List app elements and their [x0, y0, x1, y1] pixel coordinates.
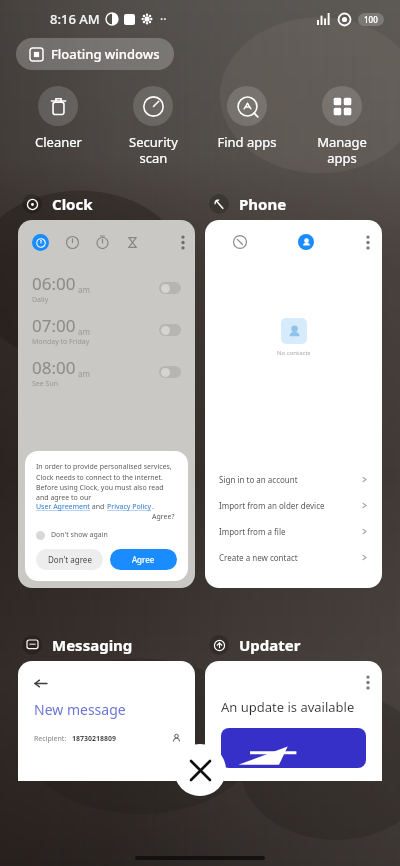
staticText: 06:00 [32, 272, 76, 295]
button[interactable]: Don't show again [36, 530, 108, 540]
button[interactable]: Import from an older device [205, 492, 382, 518]
staticText: Security scan [129, 133, 178, 166]
button[interactable]: New message [18, 661, 195, 781]
button[interactable]: 08:00 [18, 351, 195, 393]
staticText: 18730218809 [72, 734, 117, 744]
staticText: Don't agree [48, 554, 92, 565]
button[interactable]: Phone [205, 194, 287, 214]
staticText: 8:16 AM [50, 10, 100, 28]
staticText: Floating windows [51, 45, 160, 63]
button[interactable]: Close all [174, 744, 226, 796]
staticText: Updater [239, 635, 301, 655]
staticText: See Sun [32, 379, 59, 389]
staticText: 08:00 [32, 356, 76, 379]
staticText: Daily [32, 295, 49, 305]
staticText: Don't show again [51, 530, 108, 540]
staticText: am [78, 284, 90, 295]
button[interactable]: 06:00 [18, 267, 195, 309]
button[interactable]: Create a new contact [205, 544, 382, 570]
staticText: 07:00 [32, 314, 76, 337]
staticText: Phone [239, 194, 287, 214]
staticText: Import from an older device [219, 500, 325, 511]
staticText: am [78, 326, 90, 337]
button[interactable]: Messaging [18, 635, 133, 655]
staticText: Create a new contact [219, 552, 298, 563]
button[interactable]: Security scan [111, 86, 195, 166]
button[interactable]: Cleaner [16, 86, 100, 151]
staticText: . Agree? [152, 502, 177, 522]
button[interactable]: Sign in to an account [205, 466, 382, 492]
staticText: Sign in to an account [219, 474, 298, 485]
staticText: Import from a file [219, 526, 286, 537]
staticText: New message [34, 700, 126, 719]
staticText: Manage apps [317, 133, 367, 166]
staticText: An update is available [221, 698, 355, 716]
button[interactable]: Manage apps [300, 86, 384, 166]
staticText: Messaging [52, 635, 133, 655]
staticText: Recipient: [34, 734, 67, 744]
button[interactable]: Clock [18, 194, 93, 214]
staticText: am [78, 368, 90, 379]
button[interactable]: 07:00 [18, 309, 195, 351]
button[interactable]: Updater [205, 635, 301, 655]
staticText: No contacts [277, 349, 311, 357]
staticText: Find apps [217, 133, 277, 151]
button[interactable]: An update is available [205, 661, 382, 781]
button[interactable]: Agree [110, 549, 177, 570]
button[interactable]: Don't agree [36, 549, 103, 570]
staticText: 100 [364, 14, 378, 25]
staticText: In order to provide personalised service… [36, 462, 177, 502]
button[interactable]: Floating windows [16, 38, 174, 70]
button[interactable]: 06:00 [18, 220, 195, 588]
staticText: Cleaner [35, 133, 82, 151]
staticText: Agree [132, 554, 155, 565]
staticText: Monday to Friday [32, 337, 90, 347]
staticText: Privacy Policy [107, 502, 152, 512]
button[interactable]: No contacts [205, 220, 382, 588]
staticText: User Agreement [36, 502, 90, 512]
button[interactable]: Find apps [205, 86, 289, 151]
staticText: Clock [52, 194, 93, 214]
staticText: and [90, 502, 107, 512]
staticText: ·· [160, 11, 167, 27]
button[interactable]: Import from a file [205, 518, 382, 544]
